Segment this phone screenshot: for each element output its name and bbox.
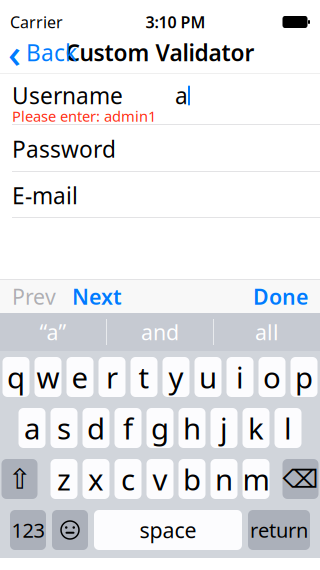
button[interactable]: x xyxy=(82,459,109,499)
button[interactable]: c xyxy=(114,459,141,499)
button[interactable]: k xyxy=(242,408,269,448)
button[interactable]: Shift xyxy=(1,459,37,499)
button[interactable]: b xyxy=(178,459,205,499)
staticText: “a” xyxy=(39,318,66,346)
button[interactable]: s xyxy=(50,408,77,448)
button[interactable]: ‹ xyxy=(0,32,85,72)
button[interactable]: Done xyxy=(243,280,320,313)
staticText: v xyxy=(152,459,167,498)
staticText: j xyxy=(220,408,228,447)
staticText: r xyxy=(106,357,118,396)
button[interactable]: “a” xyxy=(0,313,106,351)
button[interactable]: w xyxy=(34,357,61,397)
button[interactable]: r xyxy=(98,357,125,397)
staticText: g xyxy=(151,408,169,447)
staticText: ‹ xyxy=(8,26,21,79)
button[interactable]: y xyxy=(162,357,189,397)
staticText: k xyxy=(248,408,264,447)
button[interactable]: Delete xyxy=(282,459,318,499)
button[interactable]: and xyxy=(107,313,213,351)
staticText: and xyxy=(141,318,179,346)
button[interactable]: Next xyxy=(66,280,132,313)
button[interactable]: all xyxy=(214,313,320,351)
staticText: p xyxy=(295,357,313,396)
button[interactable]: l xyxy=(274,408,301,448)
staticText: y xyxy=(168,357,183,396)
button[interactable]: t xyxy=(130,357,157,397)
button[interactable]: h xyxy=(178,408,205,448)
staticText: q xyxy=(7,357,25,396)
button[interactable]: space xyxy=(94,510,242,550)
staticText: a xyxy=(24,408,40,447)
staticText: Custom Validator xyxy=(65,37,254,67)
button[interactable]: n xyxy=(210,459,237,499)
staticText: f xyxy=(123,408,133,447)
button[interactable]: q xyxy=(2,357,29,397)
staticText: Prev xyxy=(12,282,56,311)
staticText: e xyxy=(71,357,88,396)
staticText: m xyxy=(242,459,269,498)
button[interactable]: j xyxy=(210,408,237,448)
button[interactable]: z xyxy=(50,459,77,499)
staticText: o xyxy=(263,357,281,396)
staticText: l xyxy=(284,408,292,447)
staticText: all xyxy=(255,318,279,346)
staticText: t xyxy=(138,357,149,396)
button[interactable]: u xyxy=(194,357,221,397)
button[interactable]: return xyxy=(248,510,310,550)
staticText: x xyxy=(88,459,104,498)
staticText: space xyxy=(139,516,196,544)
button[interactable]: f xyxy=(114,408,141,448)
staticText: E-mail xyxy=(12,180,78,210)
button[interactable]: i xyxy=(226,357,253,397)
staticText: w xyxy=(36,357,59,396)
staticText: h xyxy=(183,408,201,447)
staticText: return xyxy=(250,517,308,543)
staticText: c xyxy=(121,459,135,498)
button[interactable]: o xyxy=(258,357,285,397)
staticText: a xyxy=(175,80,188,110)
staticText: z xyxy=(57,459,71,498)
staticText: s xyxy=(57,408,71,447)
staticText: 123 xyxy=(11,517,44,543)
button[interactable]: Emoji xyxy=(52,510,88,550)
button[interactable]: v xyxy=(146,459,173,499)
staticText: Back xyxy=(26,37,77,67)
staticText: i xyxy=(236,357,244,396)
button[interactable]: m xyxy=(242,459,269,499)
staticText: Carrier xyxy=(10,11,63,33)
button[interactable]: Prev xyxy=(0,280,66,313)
staticText: Please enter: admin1 xyxy=(12,106,156,126)
staticText: 3:10 PM xyxy=(145,11,205,33)
button[interactable]: e xyxy=(66,357,93,397)
button[interactable]: p xyxy=(290,357,317,397)
button[interactable]: g xyxy=(146,408,173,448)
staticText: Password xyxy=(12,134,116,164)
staticText: Next xyxy=(72,282,122,311)
button[interactable]: d xyxy=(82,408,109,448)
staticText: ⌫ xyxy=(282,465,318,493)
staticText: d xyxy=(87,408,105,447)
staticText: Done xyxy=(253,282,308,311)
staticText: ⇧ xyxy=(8,463,31,495)
staticText: n xyxy=(215,459,233,498)
button[interactable]: a xyxy=(18,408,45,448)
staticText: b xyxy=(183,459,201,498)
button[interactable]: 123 xyxy=(10,510,46,550)
staticText: u xyxy=(199,357,217,396)
staticText: Username xyxy=(12,80,123,110)
